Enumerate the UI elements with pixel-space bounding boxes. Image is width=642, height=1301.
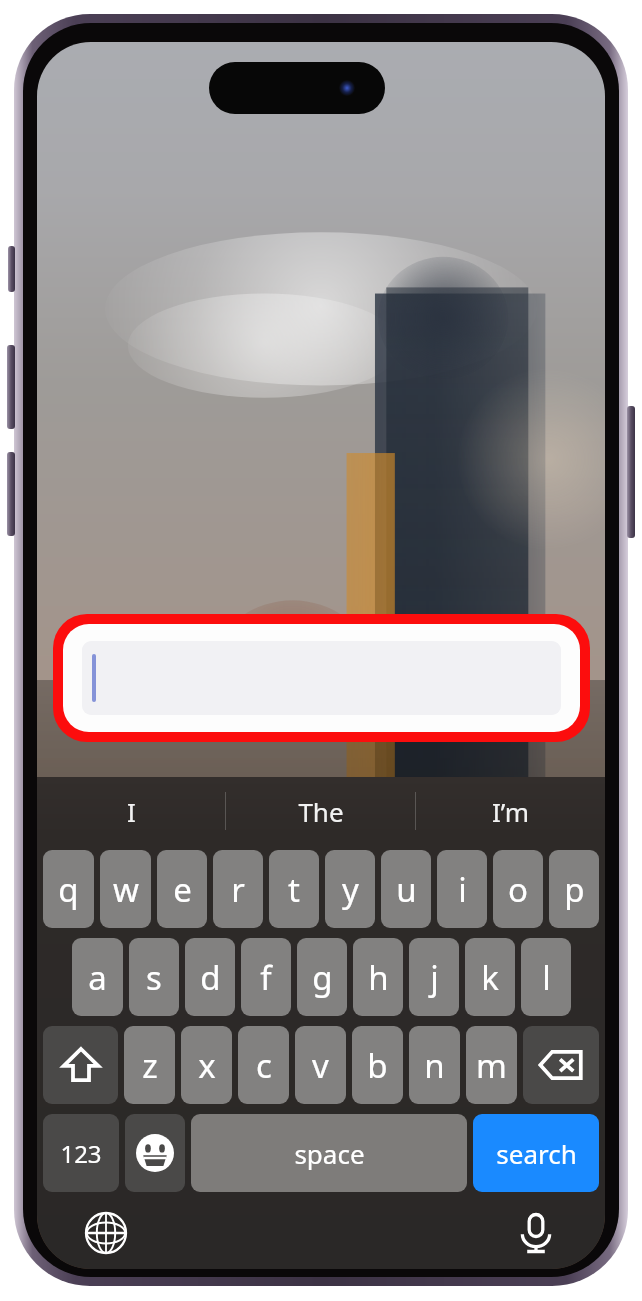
staticText: j xyxy=(430,955,439,1000)
button[interactable]: i xyxy=(437,850,487,928)
staticText: The xyxy=(298,794,344,829)
staticText: search xyxy=(496,1136,577,1171)
button[interactable]: Dictation xyxy=(507,1204,565,1262)
button[interactable]: w xyxy=(100,850,151,928)
staticText: space xyxy=(294,1136,365,1171)
button[interactable]: t xyxy=(269,850,319,928)
button[interactable]: Shift xyxy=(43,1026,118,1104)
button[interactable]: v xyxy=(295,1026,346,1104)
button[interactable]: I’m xyxy=(416,777,605,845)
button[interactable]: c xyxy=(238,1026,289,1104)
button[interactable]: Emoji xyxy=(125,1114,185,1192)
button[interactable]: f xyxy=(241,938,291,1016)
button[interactable]: o xyxy=(493,850,543,928)
staticText: y xyxy=(342,867,359,912)
button[interactable]: space xyxy=(191,1114,467,1192)
button[interactable]: g xyxy=(297,938,347,1016)
button[interactable]: s xyxy=(129,938,179,1016)
button[interactable]: z xyxy=(124,1026,175,1104)
staticText: z xyxy=(142,1043,158,1088)
button[interactable]: q xyxy=(43,850,94,928)
button[interactable]: Switch keyboard language xyxy=(77,1204,135,1262)
button[interactable]: a xyxy=(72,938,123,1016)
button[interactable]: k xyxy=(465,938,515,1016)
button[interactable]: b xyxy=(352,1026,403,1104)
staticText: v xyxy=(312,1043,329,1088)
button[interactable]: j xyxy=(409,938,459,1016)
button[interactable]: l xyxy=(521,938,571,1016)
button[interactable]: r xyxy=(213,850,263,928)
staticText: r xyxy=(231,867,245,912)
staticText: x xyxy=(198,1043,216,1088)
staticText: I’m xyxy=(492,794,529,829)
button[interactable]: n xyxy=(409,1026,460,1104)
button[interactable] xyxy=(63,624,580,732)
button[interactable]: u xyxy=(381,850,431,928)
button[interactable]: I xyxy=(37,777,225,845)
staticText: I xyxy=(127,794,136,829)
staticText: d xyxy=(200,955,221,1000)
button[interactable]: The xyxy=(226,777,415,845)
staticText: l xyxy=(542,955,551,1000)
staticText: c xyxy=(256,1043,272,1088)
staticText: f xyxy=(260,955,272,1000)
button[interactable]: e xyxy=(157,850,207,928)
button[interactable]: x xyxy=(181,1026,232,1104)
button[interactable]: y xyxy=(325,850,375,928)
staticText: q xyxy=(58,867,79,912)
staticText: m xyxy=(476,1043,507,1088)
button[interactable]: 123 xyxy=(43,1114,119,1192)
button[interactable]: Backspace xyxy=(523,1026,599,1104)
staticText: e xyxy=(173,867,192,912)
staticText: u xyxy=(396,867,417,912)
staticText: 123 xyxy=(60,1137,102,1170)
staticText: h xyxy=(368,955,389,1000)
staticText: o xyxy=(508,867,528,912)
button[interactable]: d xyxy=(185,938,235,1016)
staticText: s xyxy=(146,955,162,1000)
staticText: n xyxy=(424,1043,445,1088)
staticText: t xyxy=(288,867,300,912)
button[interactable]: p xyxy=(549,850,599,928)
button[interactable]: search xyxy=(473,1114,599,1192)
staticText: g xyxy=(312,955,333,1000)
staticText: b xyxy=(367,1043,388,1088)
staticText: k xyxy=(481,955,499,1000)
staticText: a xyxy=(88,955,107,1000)
staticText: p xyxy=(564,867,585,912)
button[interactable]: m xyxy=(466,1026,517,1104)
staticText: i xyxy=(458,867,467,912)
button[interactable]: h xyxy=(353,938,403,1016)
staticText: w xyxy=(113,867,139,912)
